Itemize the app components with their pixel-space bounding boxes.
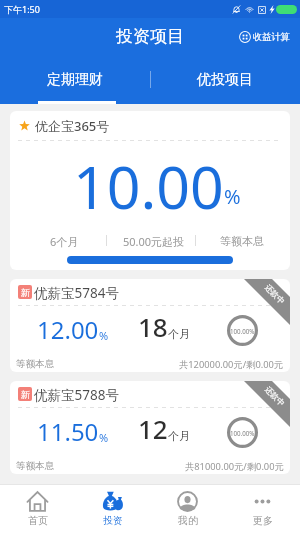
button[interactable]: 优企宝365号 [10,111,290,270]
staticText: 还款中 [263,282,287,306]
staticText: 个月 [168,327,190,341]
button[interactable]: 新 [10,279,290,372]
button[interactable]: 收益计算 [237,27,292,47]
staticText: 我的 [178,514,198,527]
staticText: 12 [138,411,168,446]
staticText: 新 [21,389,30,400]
staticText: 个月 [168,429,190,443]
staticText: 10.00 [73,146,224,226]
staticText: 优投项目 [197,71,253,89]
staticText: 新 [21,287,30,298]
staticText: 6个月 [50,234,79,249]
staticText: 等额本息 [220,234,264,248]
button[interactable]: 更多 [225,485,300,533]
staticText: 更多 [253,514,273,527]
staticText: 11.50 [37,415,99,448]
staticText: % [99,430,109,445]
staticText: 12.00 [37,313,99,346]
button[interactable] [67,256,233,264]
staticText: 下午1:50 [4,3,40,15]
staticText: 等额本息 [16,358,54,370]
staticText: 50.00元起投 [123,234,185,249]
staticText: 优薪宝5788号 [34,386,119,404]
staticText: 首页 [28,514,48,527]
other: 收益计算 [239,31,251,43]
staticText: 优企宝365号 [35,117,110,135]
staticText: 定期理财 [47,71,103,89]
button[interactable]: 新 [10,381,290,474]
button[interactable]: 首页 [0,485,75,533]
button[interactable]: 我的 [150,485,225,533]
staticText: 投资项目 [116,26,184,47]
staticText: 等额本息 [16,460,54,472]
button[interactable]: 定期理财 [0,55,150,104]
button[interactable]: 投资 [75,485,150,533]
staticText: 投资 [103,514,123,527]
staticText: 100.00% [230,429,255,437]
staticText: 优薪宝5784号 [34,284,119,302]
staticText: 18 [138,309,168,344]
staticText: % [224,183,241,210]
staticText: 收益计算 [253,31,290,43]
button[interactable]: 优投项目 [150,55,300,104]
staticText: 还款中 [263,384,287,408]
staticText: 共81000.00元/剩0.00元 [185,460,284,473]
staticText: % [99,328,109,343]
staticText: 100.00% [230,327,255,335]
staticText: 共120000.00元/剩0.00元 [179,358,284,371]
